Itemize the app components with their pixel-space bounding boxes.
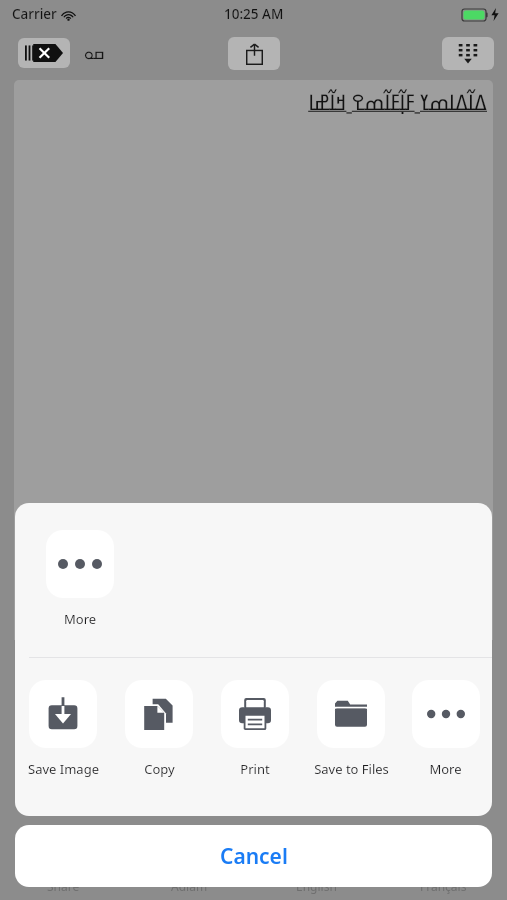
staticText: Cancel — [220, 842, 288, 871]
button[interactable]: Share — [0, 872, 126, 900]
button[interactable]: More — [399, 680, 492, 778]
button[interactable]: Adlam — [126, 872, 253, 900]
staticText: ߛߋ — [84, 43, 105, 63]
button[interactable]: Copy — [111, 680, 207, 778]
button[interactable]: Save Image — [15, 680, 111, 778]
staticText: More — [64, 610, 97, 628]
button[interactable]: Share — [228, 37, 280, 70]
button[interactable]: Save to Files — [303, 680, 399, 778]
staticText: Save Image — [28, 760, 99, 778]
button[interactable]: Français — [380, 872, 507, 900]
button[interactable]: Print — [207, 680, 303, 778]
staticText: Adlam — [171, 878, 208, 894]
staticText: ߡߊ߬ߡߊߘߌ ߓߊ߲߬ߓߊ߬ߘߐ ߞߊ߬ߝߊ — [308, 88, 487, 117]
button[interactable]: Cancel — [15, 825, 492, 887]
staticText: 10:25 AM — [224, 5, 284, 23]
staticText: Print — [240, 760, 270, 778]
staticText: Copy — [144, 760, 175, 778]
staticText: More — [429, 760, 462, 778]
staticText: English — [296, 878, 337, 894]
staticText: Carrier — [12, 5, 57, 23]
button[interactable]: English — [253, 872, 380, 900]
button[interactable]: Clear — [18, 38, 70, 68]
staticText: Français — [420, 878, 467, 894]
staticText: Save to Files — [314, 760, 389, 778]
button[interactable]: Hide keyboard — [442, 37, 494, 70]
staticText: Share — [47, 878, 80, 894]
button[interactable]: More — [31, 530, 129, 628]
